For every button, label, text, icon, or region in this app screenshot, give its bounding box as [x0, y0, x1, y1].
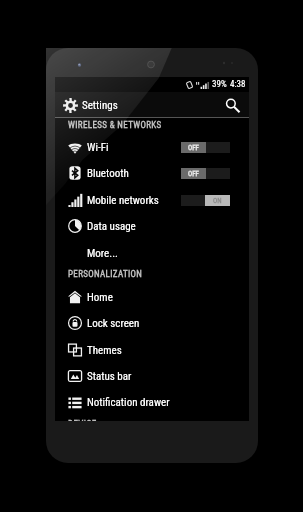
staticText: Wi-Fi — [87, 141, 109, 154]
staticText: Settings — [82, 99, 118, 112]
button[interactable]: Wi-Fi — [55, 134, 249, 160]
staticText: Notification drawer — [87, 396, 170, 409]
staticText: OFF — [188, 170, 199, 178]
button[interactable]: Lock screen — [55, 310, 249, 336]
staticText: 4:38 — [230, 79, 246, 90]
staticText: Data usage — [87, 220, 136, 233]
staticText: More... — [87, 247, 118, 260]
staticText: Lock screen — [87, 317, 140, 330]
button[interactable]: Bluetooth — [55, 160, 249, 186]
button[interactable]: Off — [181, 142, 230, 153]
staticText: ON — [213, 197, 222, 205]
button[interactable]: Themes — [55, 337, 249, 363]
button[interactable]: More... — [55, 240, 249, 266]
staticText: DEVICE — [68, 419, 97, 421]
button[interactable]: Notification drawer — [55, 389, 249, 415]
button[interactable]: Off — [181, 168, 230, 179]
staticText: WIRELESS & NETWORKS — [68, 120, 162, 131]
staticText: Home — [87, 291, 113, 304]
staticText: Mobile networks — [87, 194, 159, 207]
button[interactable]: Status bar — [55, 363, 249, 389]
button[interactable]: Search — [224, 97, 240, 113]
button[interactable]: On — [181, 195, 230, 206]
staticText: PERSONALIZATION — [68, 269, 143, 280]
staticText: Status bar — [87, 370, 132, 383]
button[interactable]: Data usage — [55, 213, 249, 239]
staticText: Bluetooth — [87, 167, 129, 180]
staticText: OFF — [188, 144, 199, 152]
staticText: Themes — [87, 344, 122, 357]
button[interactable]: Home — [55, 284, 249, 310]
button[interactable]: Mobile networks — [55, 187, 249, 213]
staticText: 39% — [212, 79, 227, 90]
